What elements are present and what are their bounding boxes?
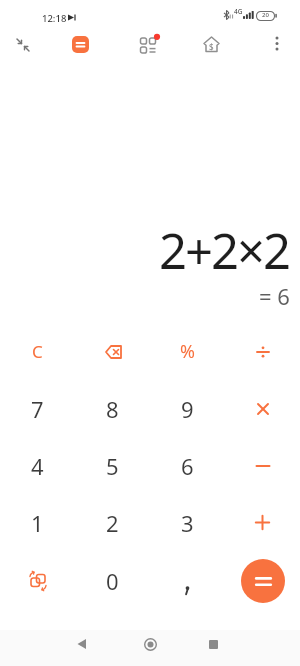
button[interactable]: 0 (75, 551, 150, 610)
button[interactable] (70, 633, 92, 655)
button[interactable]: 8 (75, 380, 150, 437)
staticText: = 6 (259, 281, 290, 311)
button[interactable]: 4 (0, 437, 75, 494)
button[interactable]: 7 (0, 380, 75, 437)
button[interactable] (75, 323, 150, 380)
staticText: 2+2×2 (159, 217, 290, 284)
staticText: 3 (181, 508, 194, 538)
button[interactable] (202, 633, 224, 655)
button[interactable] (241, 559, 285, 603)
button[interactable]: C (0, 323, 75, 380)
button[interactable]: 9 (150, 380, 225, 437)
button[interactable] (225, 380, 300, 437)
button[interactable] (139, 633, 161, 655)
button[interactable] (0, 551, 75, 610)
staticText: 4G (234, 7, 243, 16)
staticText: $ (209, 41, 214, 52)
button[interactable]: 2 (75, 494, 150, 551)
staticText: % (180, 339, 195, 364)
button[interactable] (225, 437, 300, 494)
button[interactable] (225, 494, 300, 551)
button[interactable] (14, 36, 32, 54)
button[interactable] (139, 35, 159, 55)
button[interactable]: 6 (150, 437, 225, 494)
button[interactable]: % (150, 323, 225, 380)
button[interactable]: 5 (75, 437, 150, 494)
staticText: 12:18 (42, 12, 67, 25)
staticText: 4 (31, 451, 44, 481)
button[interactable] (72, 36, 89, 53)
staticText: 2 (106, 508, 119, 538)
button[interactable] (225, 323, 300, 380)
staticText: 5 (106, 451, 119, 481)
staticText: 9 (181, 394, 194, 424)
staticText: 0 (106, 566, 119, 596)
staticText: C (32, 340, 43, 363)
button[interactable] (150, 551, 225, 610)
staticText: 1 (31, 508, 44, 538)
staticText: 8 (106, 394, 119, 424)
button[interactable] (269, 35, 285, 51)
staticText: 6 (181, 451, 194, 481)
button[interactable] (225, 551, 300, 610)
staticText: 20 (262, 11, 269, 19)
staticText: 7 (31, 394, 44, 424)
button[interactable]: $ (202, 35, 221, 54)
button[interactable]: 1 (0, 494, 75, 551)
button[interactable]: 3 (150, 494, 225, 551)
